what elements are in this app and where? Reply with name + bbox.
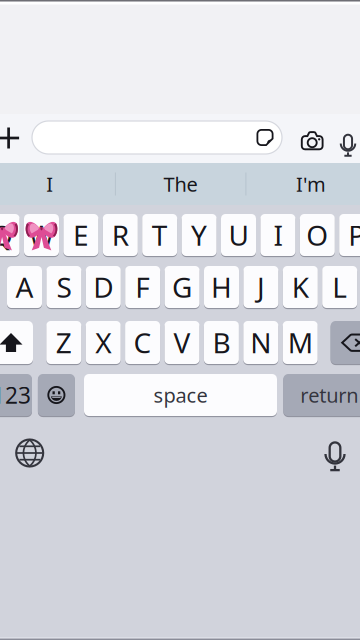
staticText: G — [172, 268, 192, 306]
button[interactable]: R — [103, 214, 138, 256]
button[interactable]: Emoji — [38, 374, 75, 416]
staticText: I — [273, 216, 282, 254]
button[interactable]: I — [260, 214, 295, 256]
staticText: I'm — [296, 171, 326, 197]
button[interactable]: Add attachment — [0, 120, 25, 156]
button[interactable]: space — [84, 374, 277, 416]
staticText: L — [332, 268, 347, 306]
staticText: R — [112, 216, 129, 254]
button[interactable]: T — [142, 214, 177, 256]
button[interactable]: D — [86, 266, 121, 308]
staticText: X — [95, 324, 111, 361]
button[interactable]: L — [322, 266, 357, 308]
staticText: F — [135, 268, 150, 306]
button[interactable]: Return — [283, 374, 360, 416]
button[interactable]: S — [46, 266, 81, 308]
staticText: return — [300, 382, 358, 408]
button[interactable]: K — [283, 266, 318, 308]
staticText: Q — [0, 216, 13, 254]
staticText: H — [211, 268, 232, 306]
button[interactable]: P — [339, 214, 360, 256]
button[interactable]: G — [165, 266, 200, 308]
staticText: The — [163, 171, 197, 197]
button[interactable]: X — [86, 321, 121, 364]
button[interactable]: Z — [46, 321, 81, 364]
button[interactable]: W — [24, 214, 59, 256]
staticText: J — [257, 268, 265, 306]
button[interactable]: B — [204, 321, 239, 364]
button[interactable]: Numbers — [0, 374, 32, 416]
staticText: P — [348, 216, 360, 254]
staticText: Y — [191, 216, 207, 254]
button[interactable]: H — [204, 266, 239, 308]
button[interactable]: N — [243, 321, 278, 364]
staticText: T — [152, 216, 168, 254]
staticText: W — [28, 216, 54, 254]
button[interactable]: F — [125, 266, 160, 308]
button[interactable]: U — [221, 214, 256, 256]
button[interactable]: The — [115, 163, 246, 205]
button[interactable]: Q — [0, 214, 20, 256]
staticText: C — [134, 324, 152, 361]
button[interactable]: Next keyboard — [8, 431, 52, 475]
button[interactable]: V — [164, 321, 199, 364]
staticText: space — [153, 382, 207, 408]
staticText: K — [292, 268, 309, 306]
button[interactable]: Audio message — [334, 125, 360, 159]
staticText: B — [212, 324, 230, 361]
staticText: D — [93, 268, 113, 306]
button[interactable]: Stickers — [248, 121, 282, 153]
button[interactable]: Y — [182, 214, 217, 256]
button[interactable]: I'm — [246, 163, 360, 205]
button[interactable]: O — [300, 214, 335, 256]
staticText: O — [306, 216, 328, 254]
staticText: N — [250, 324, 271, 361]
button[interactable]: Camera — [295, 124, 329, 158]
button[interactable]: M — [283, 321, 318, 364]
button[interactable]: E — [63, 214, 98, 256]
button[interactable]: A — [7, 266, 42, 308]
staticText: V — [173, 324, 190, 361]
staticText: M — [288, 324, 313, 361]
staticText: Z — [56, 324, 72, 361]
button[interactable]: J — [243, 266, 278, 308]
button[interactable]: Delete — [331, 321, 360, 364]
staticText: S — [56, 268, 71, 306]
staticText: 123 — [0, 380, 31, 410]
button[interactable]: C — [125, 321, 160, 364]
button[interactable]: Shift — [0, 321, 33, 364]
staticText: U — [228, 216, 248, 254]
staticText: E — [73, 216, 89, 254]
staticText: A — [15, 268, 33, 306]
button[interactable]: Dictation — [313, 430, 357, 474]
staticText: I — [46, 171, 53, 197]
button[interactable]: I — [0, 163, 115, 205]
